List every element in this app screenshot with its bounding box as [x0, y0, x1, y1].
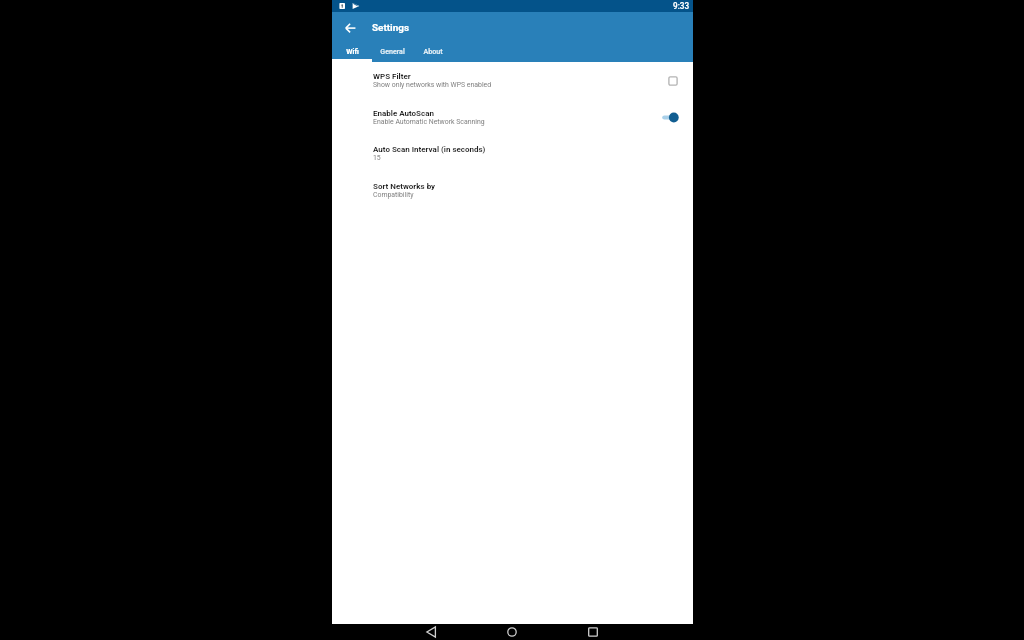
- button[interactable]: Enable AutoScan: [332, 98, 693, 135]
- button[interactable]: General: [372, 43, 412, 62]
- staticText: Wifi: [346, 47, 359, 55]
- staticText: Auto Scan Interval (in seconds): [373, 145, 486, 154]
- staticText: Enable AutoScan: [373, 109, 434, 118]
- staticText: General: [380, 47, 405, 55]
- staticText: WPS Filter: [373, 72, 411, 81]
- button[interactable]: WPS Filter: [332, 61, 693, 98]
- button[interactable]: Sort Networks by: [332, 171, 693, 208]
- staticText: Sort Networks by: [373, 182, 436, 191]
- button[interactable]: Wifi: [332, 43, 372, 62]
- button[interactable]: Navigate up: [332, 12, 368, 43]
- staticText: Enable Automatic Network Scanning: [373, 118, 485, 126]
- button[interactable]: About: [412, 43, 453, 62]
- staticText: 15: [373, 154, 381, 162]
- button[interactable]: Home: [452, 624, 572, 640]
- staticText: Settings: [372, 22, 410, 34]
- staticText: 9:33: [673, 1, 690, 11]
- staticText: About: [423, 47, 443, 55]
- button[interactable]: Recent apps: [572, 624, 693, 640]
- staticText: Compatibility: [373, 191, 414, 199]
- staticText: Show only networks with WPS enabled: [373, 81, 492, 89]
- button[interactable]: Back: [332, 624, 452, 640]
- button[interactable]: WPS Filter checkbox: [666, 74, 679, 87]
- button[interactable]: Auto Scan Interval (in seconds): [332, 134, 693, 171]
- button[interactable]: Enable AutoScan toggle: [661, 111, 679, 124]
